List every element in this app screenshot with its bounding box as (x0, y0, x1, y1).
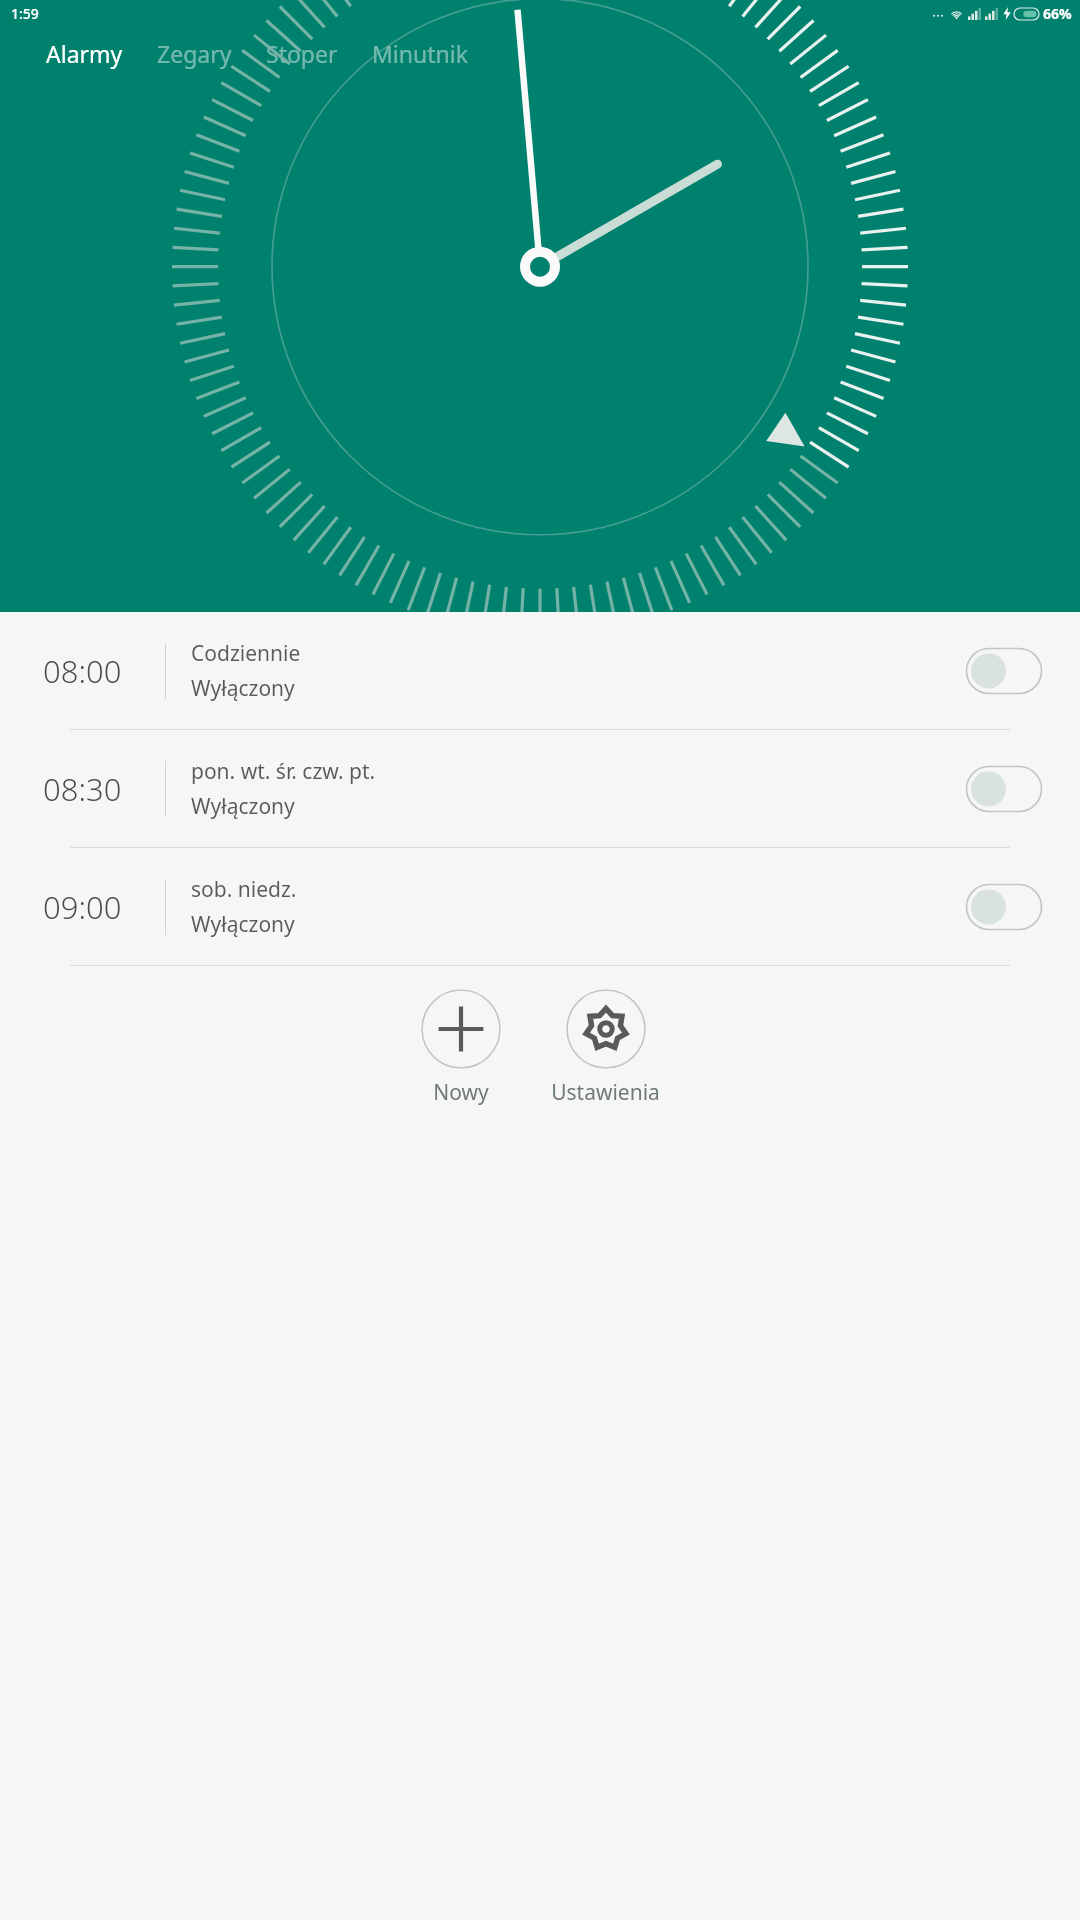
button[interactable]: Przełącznik alarmu (966, 648, 1042, 694)
staticText: Wyłączony (191, 674, 295, 703)
staticText: Stoper (266, 38, 338, 69)
staticText: 08:30 (43, 768, 122, 810)
staticText: sob. niedz. (191, 875, 297, 904)
staticText: 08:00 (43, 650, 122, 692)
button[interactable]: Nowy (415, 966, 507, 1113)
staticText: Nowy (433, 1078, 489, 1107)
staticText: pon. wt. śr. czw. pt. (191, 757, 376, 786)
staticText: Ustawienia (551, 1078, 660, 1107)
staticText: Codziennie (191, 639, 301, 668)
staticText: Zegary (157, 38, 232, 69)
staticText: 09:00 (43, 886, 122, 928)
button[interactable]: 09:00 (0, 848, 1080, 965)
button[interactable]: Przełącznik alarmu (966, 766, 1042, 812)
button[interactable]: Alarmy (40, 32, 129, 75)
button[interactable]: Zegary (151, 32, 238, 75)
button[interactable]: 08:30 (0, 730, 1080, 847)
staticText: Alarmy (46, 38, 123, 69)
button[interactable]: Minutnik (366, 32, 474, 75)
button[interactable]: Stoper (260, 32, 344, 75)
staticText: Wyłączony (191, 792, 295, 821)
staticText: Minutnik (372, 38, 468, 69)
staticText: 66% (1043, 4, 1072, 23)
button[interactable]: Ustawienia (545, 966, 666, 1113)
staticText: 1:59 (11, 4, 39, 23)
staticText: Wyłączony (191, 910, 295, 939)
button[interactable]: 08:00 (0, 612, 1080, 729)
button[interactable]: Przełącznik alarmu (966, 884, 1042, 930)
